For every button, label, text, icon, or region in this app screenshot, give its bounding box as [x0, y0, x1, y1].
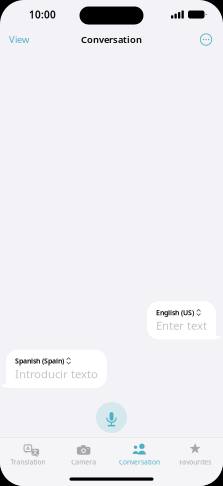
- staticText: English (US): [156, 308, 194, 317]
- button[interactable]: Conversation: [111, 438, 167, 469]
- staticText: View: [9, 33, 29, 46]
- staticText: Camera: [71, 457, 96, 466]
- button[interactable]: Start recording: [96, 402, 127, 433]
- staticText: Conversation: [81, 33, 142, 46]
- button[interactable]: Favourites: [167, 438, 223, 469]
- staticText: Introducir texto: [15, 366, 98, 381]
- staticText: Favourites: [179, 457, 211, 466]
- staticText: Conversation: [119, 457, 160, 466]
- staticText: 文: [32, 449, 38, 456]
- staticText: Enter text: [156, 318, 207, 333]
- staticText: 10:00: [29, 8, 56, 21]
- button[interactable]: More options: [191, 29, 223, 49]
- button[interactable]: A: [0, 438, 56, 469]
- staticText: A: [26, 444, 30, 452]
- staticText: Translation: [10, 457, 45, 466]
- button[interactable]: View: [0, 29, 38, 49]
- button[interactable]: Camera: [56, 438, 112, 469]
- staticText: Spanish (Spain): [15, 356, 64, 365]
